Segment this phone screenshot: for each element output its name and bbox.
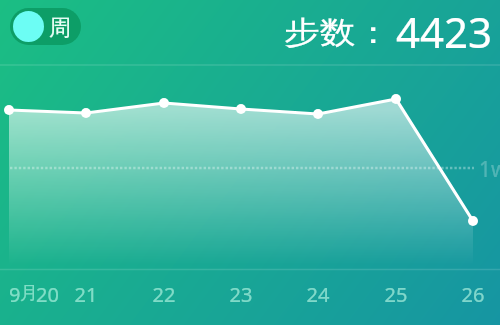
button[interactable]: Weekly step chart bbox=[0, 0, 500, 325]
button[interactable]: Switch range: week bbox=[10, 8, 81, 45]
